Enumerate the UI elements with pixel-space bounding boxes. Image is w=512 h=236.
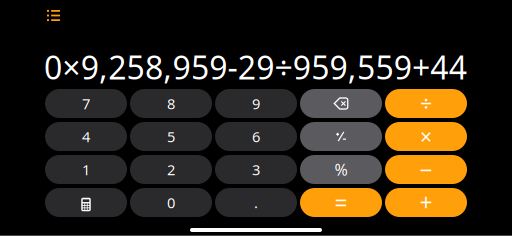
staticText: − [419,154,432,184]
button[interactable]: × [385,122,467,151]
button[interactable] [300,89,382,118]
staticText: 4 [82,127,90,146]
staticText: . [254,193,258,212]
button[interactable]: 8 [130,89,212,118]
button[interactable]: % [300,155,382,184]
button[interactable] [45,188,127,217]
button[interactable]: 0 [130,188,212,217]
staticText: 3 [252,160,260,179]
button[interactable]: − [385,155,467,184]
staticText: 9 [252,94,260,113]
button[interactable]: 5 [130,122,212,151]
staticText: × [420,122,432,151]
staticText: 6 [252,127,260,146]
button[interactable]: 6 [215,122,297,151]
staticText: 8 [167,94,175,113]
staticText: 1 [82,160,90,179]
staticText: 0×9,258,959-29÷959,559+44 [44,46,467,88]
staticText: 2 [167,160,175,179]
button[interactable] [300,122,382,151]
staticText: % [334,159,347,180]
button[interactable]: 2 [130,155,212,184]
button[interactable]: + [385,188,467,217]
button[interactable]: 9 [215,89,297,118]
button[interactable]: 3 [215,155,297,184]
staticText: = [334,187,347,217]
staticText: 0 [167,193,175,212]
button[interactable]: 1 [45,155,127,184]
staticText: ÷ [420,89,432,118]
button[interactable]: . [215,188,297,217]
staticText: 5 [167,127,175,146]
button[interactable]: History [40,3,67,28]
button[interactable]: = [300,188,382,217]
button[interactable]: 4 [45,122,127,151]
staticText: 7 [82,94,90,113]
staticText: + [419,187,432,217]
button[interactable]: ÷ [385,89,467,118]
button[interactable]: 7 [45,89,127,118]
